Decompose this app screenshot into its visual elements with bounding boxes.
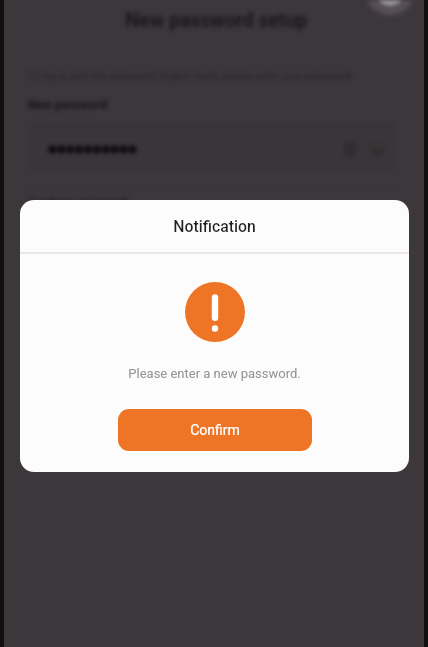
staticText: Notification [173, 217, 256, 236]
button[interactable]: Confirm [118, 409, 312, 451]
staticText: New password [28, 98, 107, 112]
staticText: New password setup [125, 9, 308, 32]
staticText: Confirm [190, 422, 240, 438]
staticText: Confirm password [28, 196, 127, 210]
staticText: Please enter a new password. [128, 366, 301, 381]
